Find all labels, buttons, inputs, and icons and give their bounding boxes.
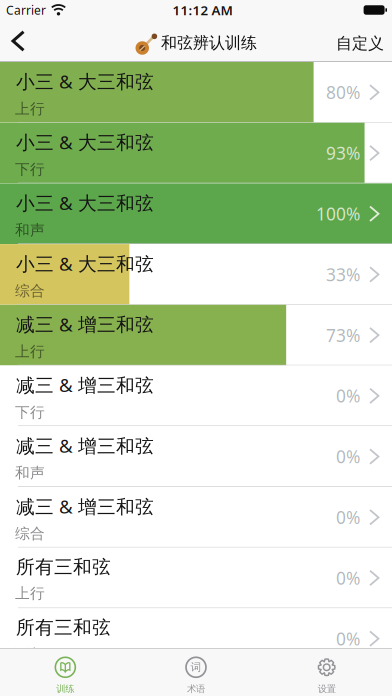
staticText: 词 (190, 661, 201, 674)
staticText: 下行 (15, 403, 45, 421)
staticText: 综合 (15, 282, 45, 300)
staticText: 小三 & 大三和弦 (16, 69, 154, 94)
staticText: 上行 (15, 100, 45, 118)
staticText: 93% (326, 141, 360, 164)
button[interactable]: 训练 (0, 649, 131, 695)
staticText: 所有三和弦 (16, 555, 111, 578)
staticText: 训练 (56, 683, 74, 695)
button[interactable]: 小三 & 大三和弦 (0, 123, 392, 183)
staticText: 33% (326, 263, 360, 286)
staticText: 下行 (15, 645, 45, 663)
staticText: 上行 (15, 584, 45, 602)
staticText: 减三 & 增三和弦 (16, 494, 154, 519)
staticText: 小三 & 大三和弦 (16, 190, 154, 215)
staticText: 综合 (15, 525, 45, 543)
staticText: 和声 (15, 221, 45, 239)
button[interactable]: 减三 & 增三和弦 (0, 305, 392, 365)
staticText: 所有三和弦 (16, 616, 111, 639)
staticText: 0% (336, 627, 360, 650)
staticText: 73% (326, 324, 360, 347)
staticText: 自定义 (336, 34, 384, 53)
staticText: 80% (326, 81, 360, 104)
staticText: 和声 (15, 464, 45, 482)
button[interactable]: 所有三和弦 (0, 548, 392, 608)
staticText: 设置 (318, 683, 336, 695)
button[interactable]: 自定义 (336, 21, 392, 61)
staticText: 术语 (187, 683, 205, 695)
staticText: 小三 & 大三和弦 (16, 130, 154, 154)
staticText: 和弦辨认训练 (161, 33, 257, 53)
button[interactable]: 减三 & 增三和弦 (0, 365, 392, 426)
button[interactable]: 减三 & 增三和弦 (0, 487, 392, 548)
button[interactable]: 小三 & 大三和弦 (0, 183, 392, 244)
button[interactable]: 设置 (261, 649, 392, 695)
button[interactable]: 所有三和弦 (0, 608, 392, 669)
staticText: 0% (336, 384, 360, 407)
button[interactable]: 小三 & 大三和弦 (0, 62, 392, 123)
staticText: 上行 (15, 342, 45, 360)
staticText: 100% (316, 202, 360, 225)
staticText: 11:12 AM (172, 1, 232, 19)
staticText: 0% (336, 566, 360, 589)
staticText: Carrier (6, 2, 46, 18)
staticText: 小三 & 大三和弦 (16, 251, 154, 276)
button[interactable]: Back (0, 22, 23, 60)
button[interactable]: 小三 & 大三和弦 (0, 244, 392, 305)
staticText: 减三 & 增三和弦 (16, 372, 154, 397)
staticText: 0% (336, 506, 360, 529)
staticText: 0% (336, 445, 360, 468)
staticText: 减三 & 增三和弦 (16, 312, 154, 336)
button[interactable]: 词 (131, 649, 261, 695)
button[interactable]: 减三 & 增三和弦 (0, 426, 392, 487)
staticText: 减三 & 增三和弦 (16, 433, 154, 458)
staticText: 下行 (15, 160, 45, 178)
